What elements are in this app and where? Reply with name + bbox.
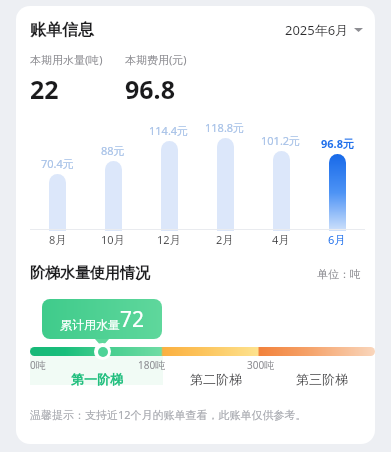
staticText: 8月 (49, 232, 67, 247)
staticText: 2月 (216, 232, 234, 247)
staticText: 12月 (157, 232, 181, 247)
staticText: 101.2元 (261, 133, 301, 148)
staticText: 88元 (101, 143, 125, 158)
button[interactable]: 2025年6月 (285, 21, 363, 39)
button[interactable] (273, 151, 290, 231)
button[interactable] (49, 174, 66, 231)
staticText: 96.8 (125, 72, 175, 106)
staticText: 118.8元 (205, 120, 245, 135)
staticText: 第二阶梯 (190, 371, 242, 387)
staticText: 22 (30, 72, 59, 106)
staticText: 6月 (328, 232, 346, 247)
staticText: 96.8元 (321, 136, 354, 151)
staticText: 2025年6月 (285, 21, 349, 39)
button[interactable] (161, 141, 178, 231)
staticText: 阶梯水量使用情况 (30, 264, 150, 283)
staticText: 累计用水量 (60, 317, 120, 332)
staticText: 300吨 (247, 358, 275, 372)
staticText: 账单信息 (30, 20, 94, 40)
staticText: 0吨 (30, 358, 46, 372)
button[interactable] (105, 161, 122, 231)
staticText: 本期费用(元) (125, 52, 187, 67)
staticText: 第一阶梯 (71, 371, 123, 387)
button[interactable] (217, 138, 234, 231)
staticText: 114.4元 (149, 123, 189, 138)
staticText: 单位：吨 (317, 267, 361, 281)
staticText: 温馨提示：支持近12个月的账单查看，此账单仅供参考。 (30, 407, 307, 422)
staticText: 4月 (272, 232, 290, 247)
staticText: 72 (120, 305, 145, 334)
staticText: 70.4元 (41, 156, 74, 171)
staticText: 第三阶梯 (296, 371, 348, 387)
button[interactable] (329, 154, 346, 231)
staticText: 10月 (101, 232, 125, 247)
staticText: 180吨 (138, 358, 166, 372)
staticText: 本期用水量(吨) (30, 52, 103, 67)
button[interactable]: 累计用水量 (42, 299, 162, 339)
